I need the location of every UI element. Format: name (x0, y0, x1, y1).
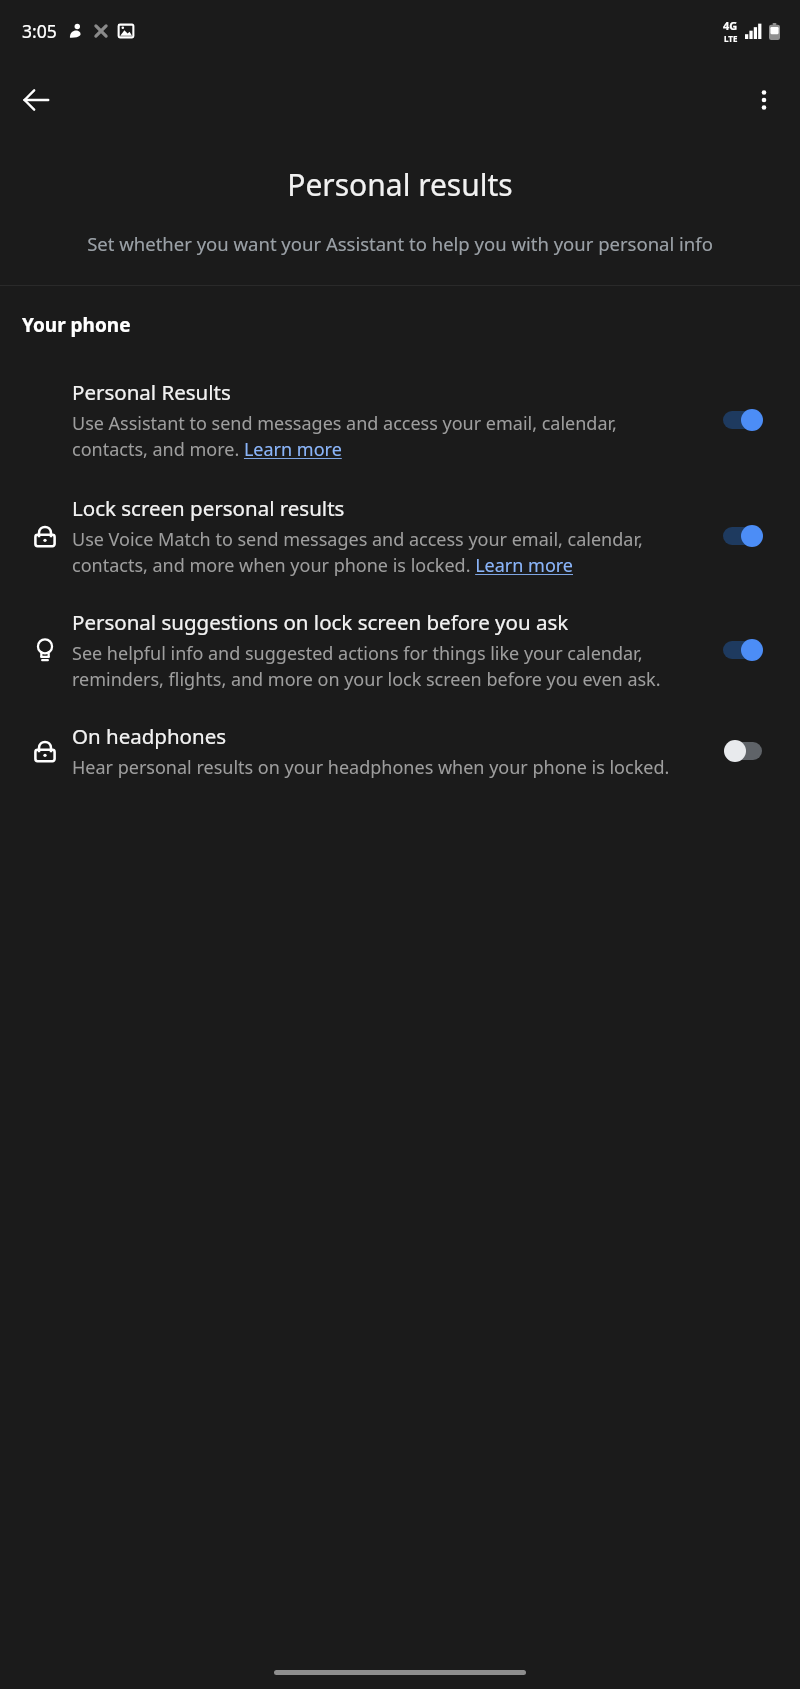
button[interactable]: On (704, 511, 782, 561)
staticText: Use Assistant to send messages and acces… (72, 411, 694, 462)
staticText: On headphones (72, 722, 227, 750)
staticText: 4G (723, 18, 738, 33)
button[interactable]: On (704, 625, 782, 675)
staticText: Personal suggestions on lock screen befo… (72, 608, 569, 636)
button[interactable]: Personal Results (0, 374, 800, 466)
staticText: Lock screen personal results (72, 494, 345, 522)
button[interactable]: Off (704, 726, 782, 776)
staticText: Personal Results (72, 378, 231, 406)
button[interactable]: More options (736, 72, 792, 128)
button[interactable]: On headphones (0, 718, 800, 784)
staticText: 3:05 (22, 19, 57, 43)
staticText: Hear personal results on your headphones… (72, 755, 670, 780)
button[interactable]: Lock screen personal results (0, 490, 800, 582)
button[interactable]: Back (8, 72, 64, 128)
staticText: Set whether you want your Assistant to h… (32, 231, 768, 256)
button[interactable]: Personal suggestions on lock screen befo… (0, 604, 800, 696)
button[interactable]: On (704, 395, 782, 445)
staticText: LTE (724, 33, 738, 44)
staticText: Use Voice Match to send messages and acc… (72, 527, 694, 578)
staticText: Personal results (24, 164, 776, 205)
staticText: See helpful info and suggested actions f… (72, 641, 694, 692)
staticText: Your phone (22, 312, 131, 338)
